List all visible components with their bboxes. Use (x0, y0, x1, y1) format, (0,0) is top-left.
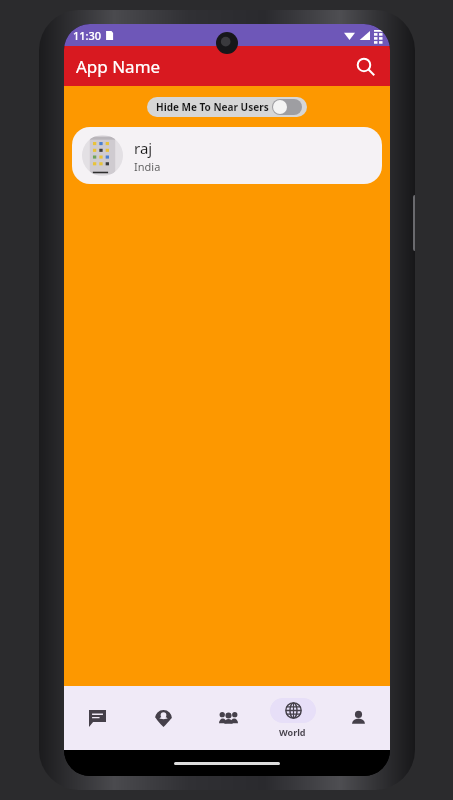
button[interactable]: raj (72, 127, 382, 184)
staticText: 11:30 (73, 28, 102, 43)
button[interactable]: Chat (64, 686, 130, 750)
button[interactable]: Nearby (130, 686, 195, 750)
staticText: App Name (76, 55, 161, 78)
staticText: World (279, 726, 306, 738)
staticText: Hide Me To Near Users (156, 100, 269, 114)
button[interactable]: Profile (325, 686, 390, 750)
button[interactable]: Hide Me To Near Users (147, 97, 307, 117)
staticText: India (134, 159, 161, 174)
staticText: raj (134, 138, 153, 158)
button[interactable]: Groups (195, 686, 260, 750)
button[interactable]: World (260, 686, 325, 750)
button[interactable]: Search (348, 49, 382, 83)
